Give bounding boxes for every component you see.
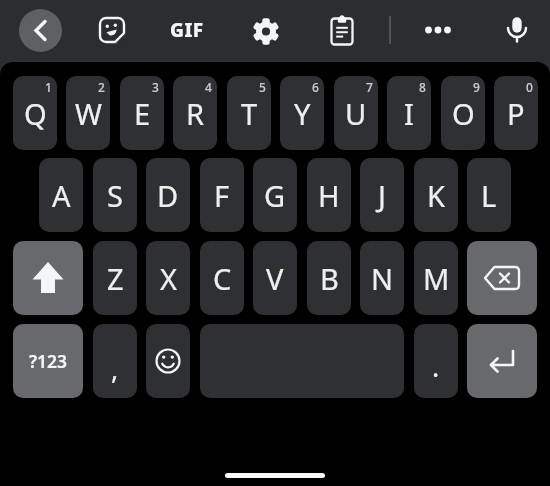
button[interactable]: G <box>253 158 297 232</box>
staticText: G <box>264 176 286 215</box>
staticText: GIF <box>170 17 204 43</box>
button[interactable]: GIF <box>165 8 209 52</box>
staticText: J <box>378 176 386 215</box>
staticText: X <box>160 259 177 298</box>
staticText: Z <box>107 259 124 298</box>
button[interactable] <box>146 324 190 398</box>
staticText: 6 <box>312 79 319 95</box>
staticText: A <box>52 176 71 215</box>
button[interactable] <box>467 324 537 398</box>
button[interactable]: J <box>360 158 404 232</box>
button[interactable]: S <box>93 158 137 232</box>
button[interactable]: M <box>414 241 458 315</box>
button[interactable]: B <box>307 241 351 315</box>
staticText: L <box>481 176 497 215</box>
button[interactable]: O <box>441 76 485 150</box>
staticText: R <box>186 94 205 133</box>
button[interactable]: N <box>360 241 404 315</box>
button[interactable]: T <box>227 76 271 150</box>
staticText: 2 <box>98 79 105 95</box>
staticText: Q <box>24 94 47 133</box>
button[interactable]: ?123 <box>13 324 83 398</box>
staticText: 3 <box>152 79 159 95</box>
button[interactable]: X <box>146 241 190 315</box>
staticText: B <box>320 259 339 298</box>
button[interactable]: I <box>387 76 431 150</box>
staticText: P <box>507 94 525 133</box>
button[interactable]: Y <box>280 76 324 150</box>
staticText: 5 <box>259 79 266 95</box>
staticText: F <box>214 176 230 215</box>
staticText: 1 <box>45 79 52 95</box>
staticText: D <box>157 176 179 215</box>
staticText: O <box>452 94 475 133</box>
button[interactable] <box>13 241 83 315</box>
staticText: , <box>111 350 119 387</box>
button[interactable]: Q <box>13 76 57 150</box>
staticText: U <box>345 94 367 133</box>
button[interactable] <box>320 9 364 53</box>
button[interactable]: A <box>39 158 83 232</box>
button[interactable] <box>19 9 62 52</box>
staticText: S <box>107 176 123 215</box>
staticText: M <box>423 259 450 298</box>
button[interactable]: Z <box>93 241 137 315</box>
button[interactable]: E <box>120 76 164 150</box>
staticText: 8 <box>419 79 426 95</box>
button[interactable]: D <box>146 158 190 232</box>
staticText: V <box>266 259 284 298</box>
staticText: . <box>432 348 440 385</box>
staticText: 9 <box>473 79 480 95</box>
staticText: 4 <box>205 79 212 95</box>
button[interactable] <box>416 8 460 52</box>
button[interactable]: C <box>200 241 244 315</box>
staticText: W <box>75 94 102 133</box>
staticText: E <box>134 94 151 133</box>
button[interactable] <box>467 241 537 315</box>
button[interactable] <box>495 7 539 51</box>
button[interactable]: L <box>467 158 511 232</box>
button[interactable]: . <box>414 324 458 398</box>
staticText: C <box>213 259 232 298</box>
button[interactable]: F <box>200 158 244 232</box>
staticText: I <box>404 94 414 133</box>
button[interactable]: U <box>334 76 378 150</box>
staticText: ?123 <box>29 349 68 373</box>
button[interactable] <box>90 8 134 52</box>
button[interactable]: K <box>414 158 458 232</box>
button[interactable] <box>200 324 404 398</box>
staticText: Y <box>294 94 311 133</box>
button[interactable]: H <box>307 158 351 232</box>
button[interactable]: R <box>173 76 217 150</box>
staticText: T <box>241 94 258 133</box>
button[interactable]: , <box>93 324 137 398</box>
staticText: 0 <box>526 79 533 95</box>
button[interactable]: P <box>494 76 538 150</box>
button[interactable]: W <box>66 76 110 150</box>
staticText: 7 <box>366 79 373 95</box>
staticText: N <box>371 259 394 298</box>
staticText: H <box>318 176 340 215</box>
button[interactable]: V <box>253 241 297 315</box>
button[interactable] <box>244 9 288 53</box>
staticText: K <box>427 176 445 215</box>
